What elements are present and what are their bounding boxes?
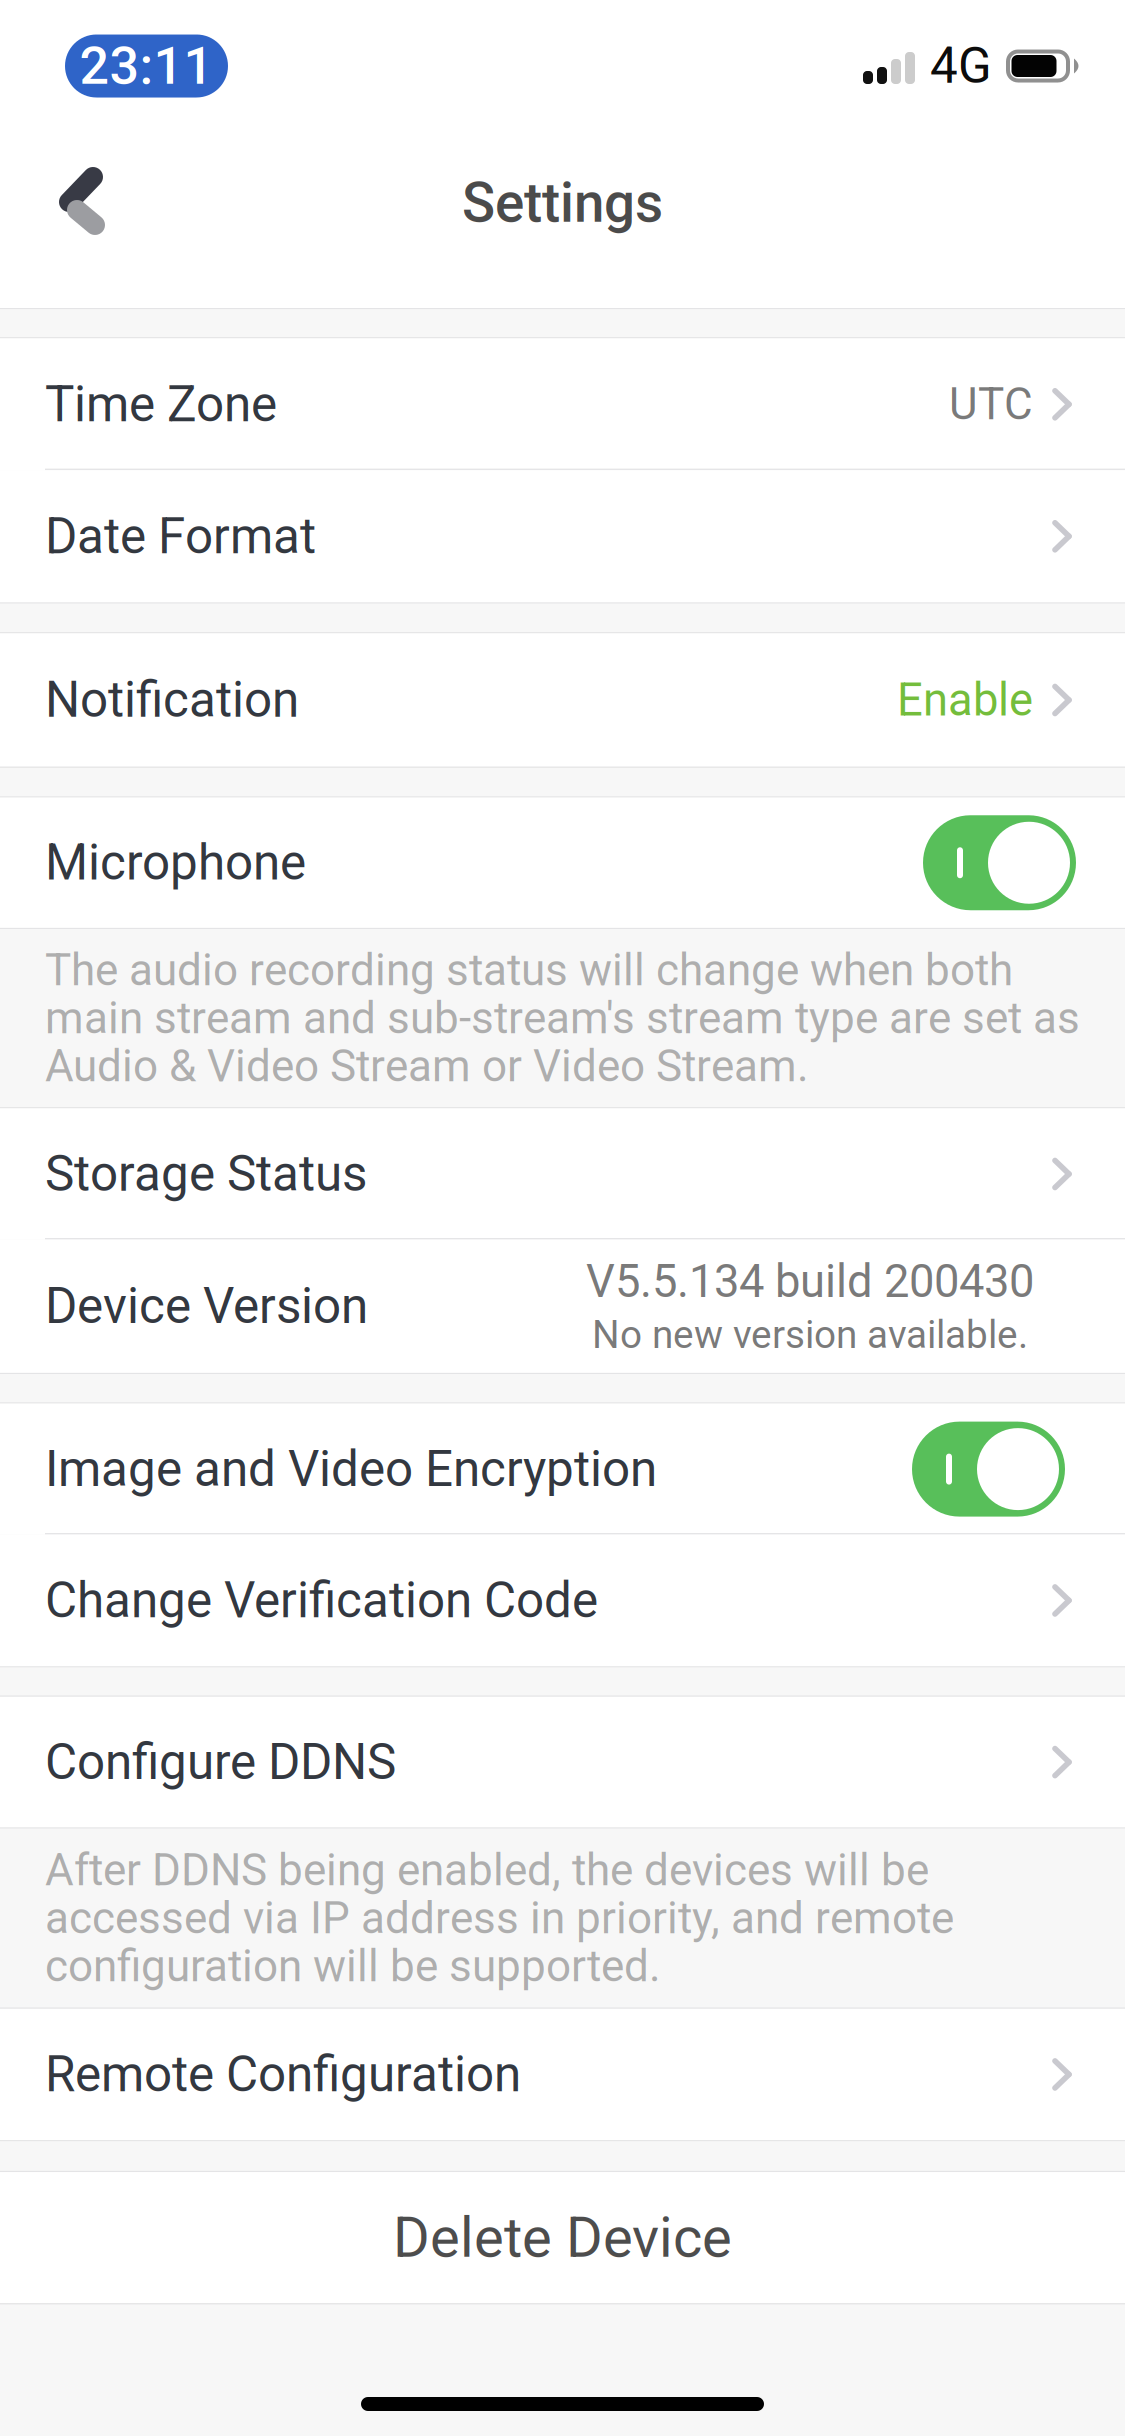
staticText: Date Format xyxy=(45,507,316,565)
button[interactable]: Back xyxy=(15,165,125,275)
staticText: V5.5.134 build 200430 xyxy=(586,1255,1034,1308)
staticText: UTC xyxy=(949,378,1033,430)
staticText: Audio & Video Stream or Video Stream. xyxy=(45,1040,809,1092)
staticText: accessed via IP address in priority, and… xyxy=(45,1892,954,1944)
staticText: Delete Device xyxy=(393,2205,732,2270)
staticText: 23:11 xyxy=(79,35,213,96)
button[interactable]: Time Zone xyxy=(0,338,1125,470)
staticText: Notification xyxy=(45,671,299,729)
button[interactable]: Storage Status xyxy=(0,1108,1125,1240)
staticText: main stream and sub-stream's stream type… xyxy=(45,992,1080,1044)
staticText: Time Zone xyxy=(45,375,277,433)
staticText: Configure DDNS xyxy=(45,1733,396,1791)
button[interactable]: Microphone xyxy=(0,798,1125,928)
staticText: Enable xyxy=(897,673,1033,726)
staticText: 4G xyxy=(930,37,992,95)
staticText: Change Verification Code xyxy=(45,1571,598,1629)
button[interactable]: Date Format xyxy=(0,470,1125,602)
staticText: Image and Video Encryption xyxy=(45,1440,657,1498)
button[interactable]: Change Verification Code xyxy=(0,1535,1125,1666)
staticText: Settings xyxy=(462,171,663,235)
staticText: After DDNS being enabled, the devices wi… xyxy=(45,1844,929,1896)
staticText: Remote Configuration xyxy=(45,2045,521,2103)
staticText: configuration will be supported. xyxy=(45,1940,661,1992)
staticText: Device Version xyxy=(45,1277,368,1335)
button[interactable]: Image and Video Encryption xyxy=(0,1404,1125,1535)
staticText: Microphone xyxy=(45,834,306,892)
button[interactable]: Configure DDNS xyxy=(0,1697,1125,1827)
staticText: No new version available. xyxy=(592,1312,1028,1357)
button[interactable]: Delete Device xyxy=(0,2172,1125,2303)
staticText: Storage Status xyxy=(45,1145,367,1203)
button[interactable]: Remote Configuration xyxy=(0,2009,1125,2140)
button[interactable]: Notification xyxy=(0,633,1125,767)
staticText: The audio recording status will change w… xyxy=(45,944,1013,996)
